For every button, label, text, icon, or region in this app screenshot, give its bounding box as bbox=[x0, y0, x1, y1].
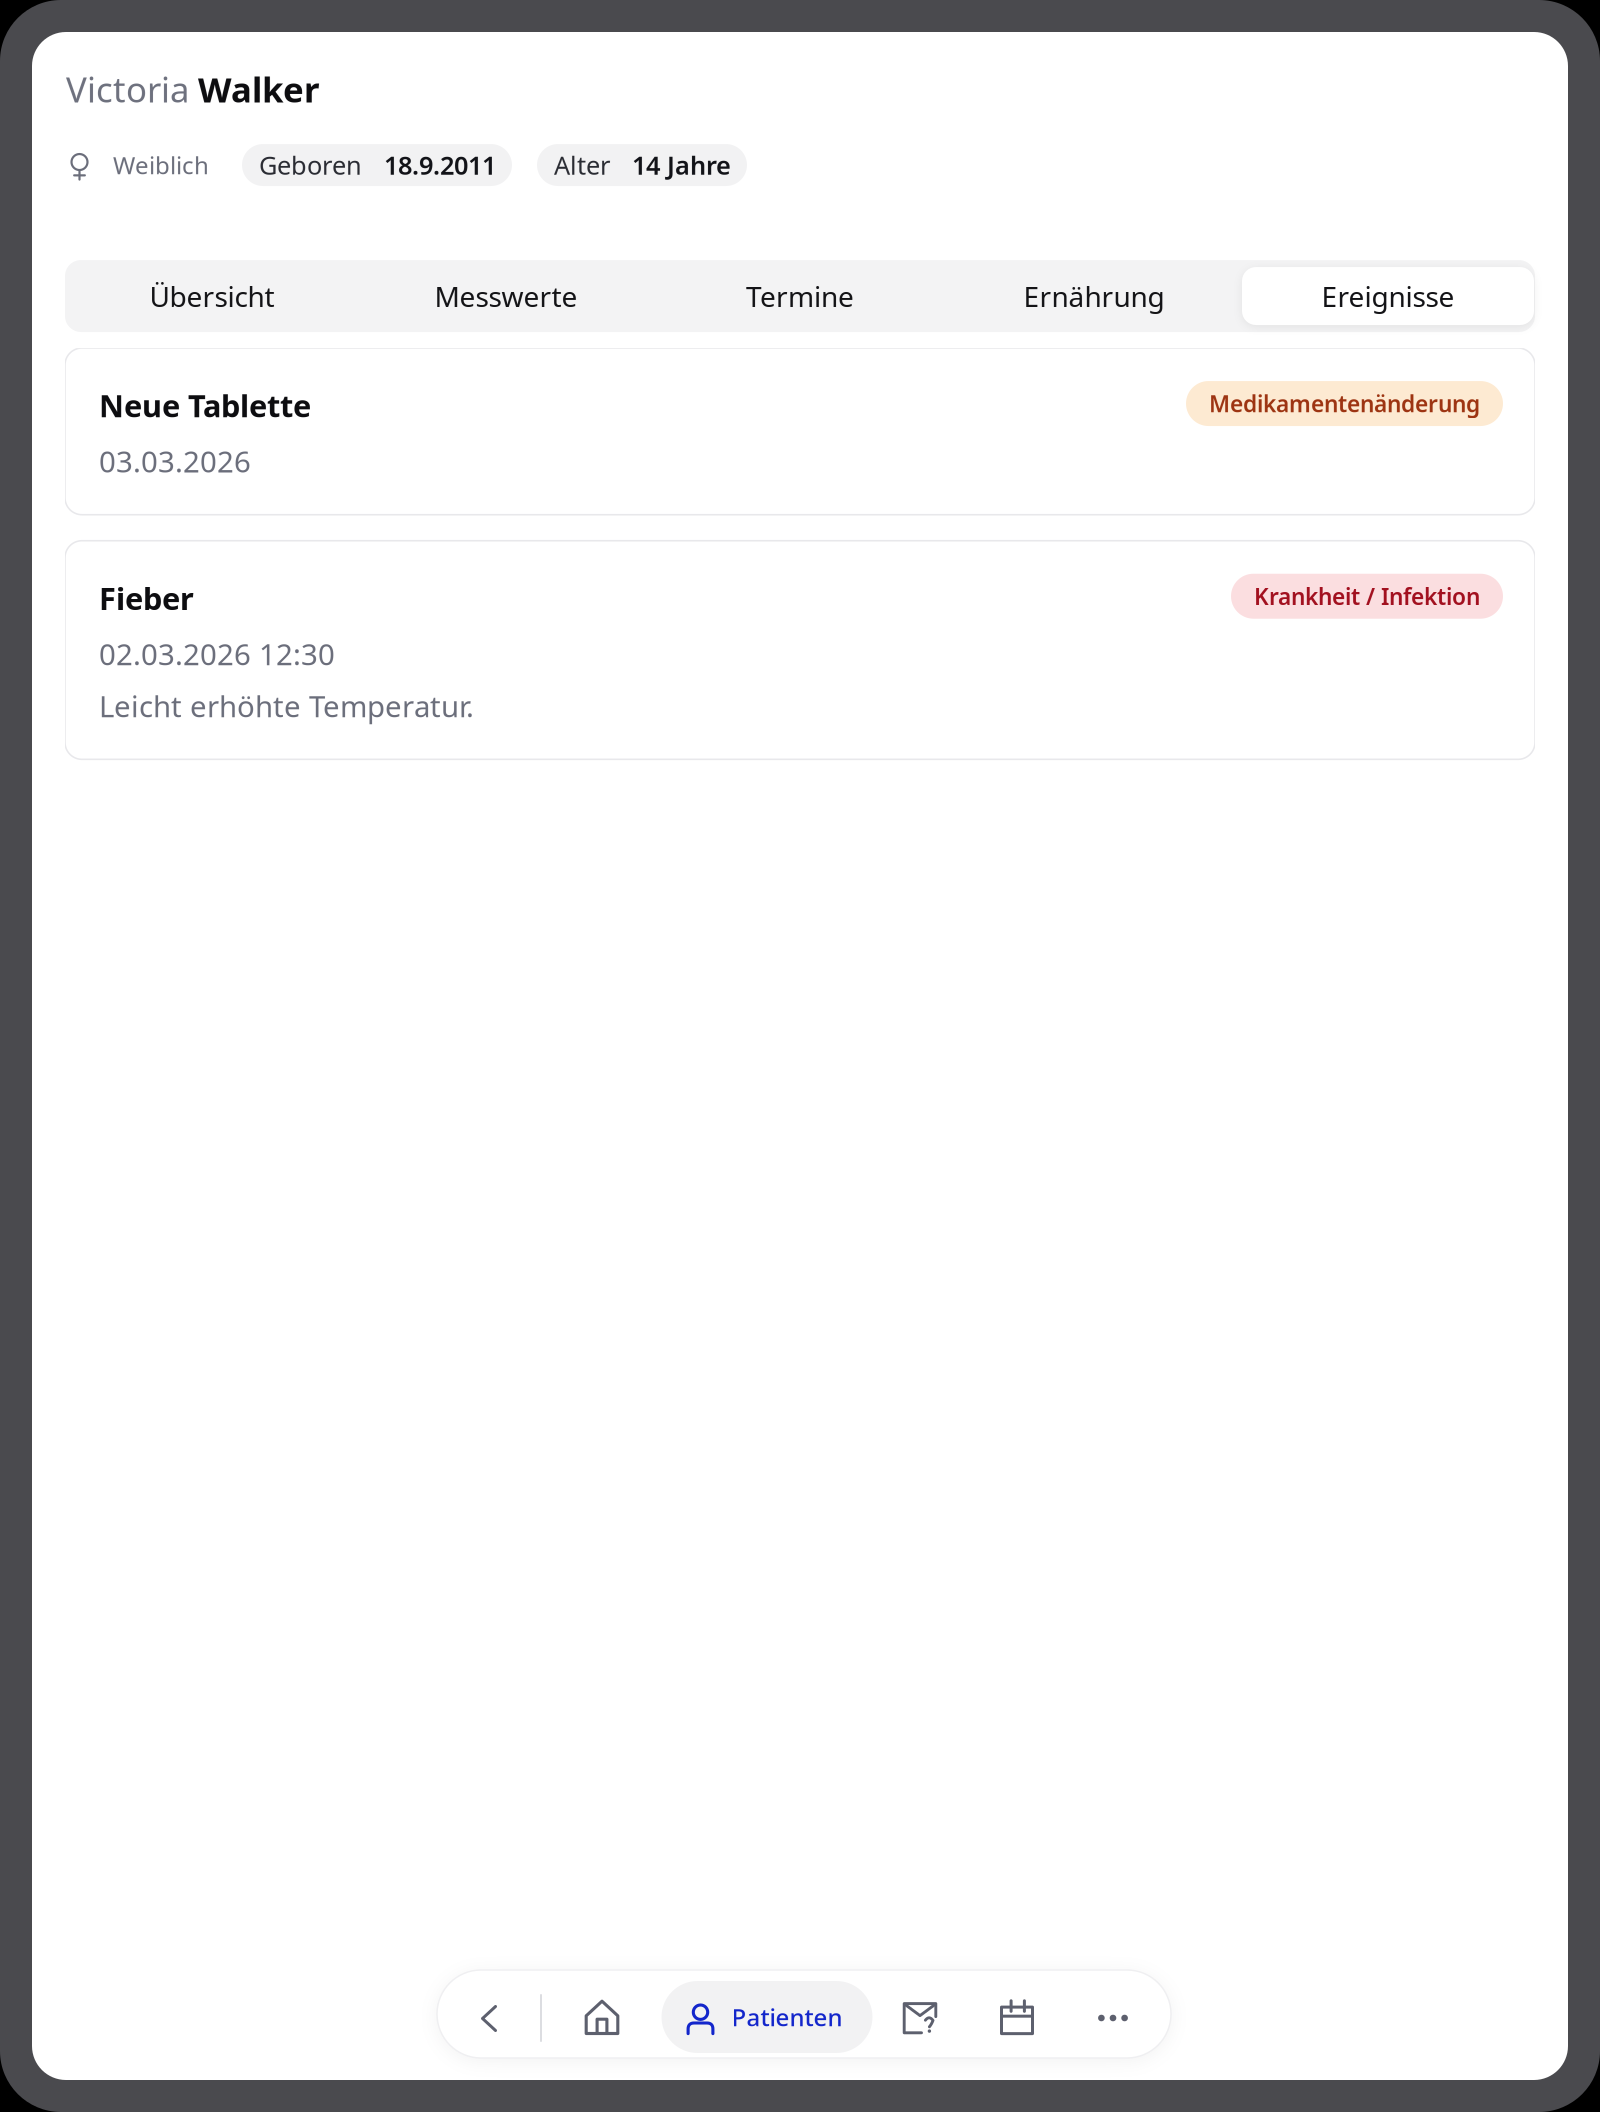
staticText: Patienten bbox=[731, 2001, 842, 2033]
button[interactable]: Start bbox=[570, 1978, 634, 2050]
staticText: Victoria bbox=[66, 66, 198, 112]
staticText: Fieber bbox=[99, 578, 194, 618]
staticText: 18.9.2011 bbox=[384, 148, 496, 182]
staticText: 03.03.2026 bbox=[99, 442, 251, 481]
staticText: Walker bbox=[198, 66, 319, 112]
staticText: Leicht erhöhte Temperatur. bbox=[99, 686, 474, 725]
staticText: Weiblich bbox=[113, 149, 209, 181]
button[interactable]: Neue Tablette bbox=[65, 348, 1535, 515]
button[interactable]: Messwerte bbox=[359, 260, 653, 332]
button[interactable]: Nachrichten bbox=[888, 1978, 952, 2050]
button[interactable]: Kalender bbox=[985, 1978, 1049, 2050]
staticText: Ereignisse bbox=[1321, 277, 1454, 315]
button[interactable]: Termine bbox=[653, 260, 947, 332]
button[interactable]: Zurück bbox=[456, 1978, 520, 2050]
staticText: Alter bbox=[554, 148, 610, 182]
button[interactable]: Fieber bbox=[65, 541, 1535, 759]
staticText: Geboren bbox=[259, 148, 362, 182]
button[interactable]: Patienten bbox=[661, 1981, 872, 2053]
button[interactable]: Ernährung bbox=[947, 260, 1241, 332]
staticText: Übersicht bbox=[149, 277, 274, 315]
staticText: Medikamentenänderung bbox=[1209, 388, 1480, 419]
button[interactable]: Mehr bbox=[1081, 1978, 1145, 2050]
staticText: Ernährung bbox=[1023, 277, 1164, 315]
staticText: 14 Jahre bbox=[632, 148, 731, 182]
staticText: Messwerte bbox=[434, 277, 577, 315]
button[interactable]: Übersicht bbox=[65, 260, 359, 332]
staticText: 02.03.2026 12:30 bbox=[99, 634, 335, 673]
staticText: Neue Tablette bbox=[99, 385, 311, 426]
staticText: Krankheit / Infektion bbox=[1254, 581, 1480, 611]
staticText: Termine bbox=[746, 277, 854, 315]
button[interactable]: Ereignisse bbox=[1241, 260, 1535, 332]
